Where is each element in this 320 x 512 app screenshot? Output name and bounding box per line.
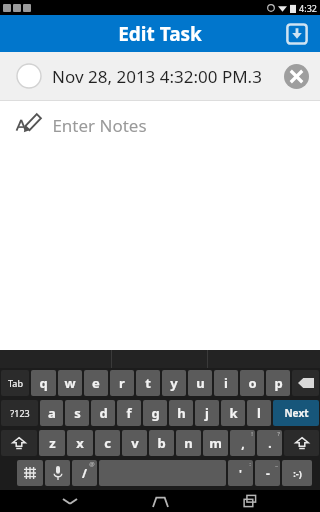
staticText: w — [64, 374, 76, 392]
button[interactable]: y — [162, 370, 186, 396]
staticText: b — [157, 434, 166, 452]
button[interactable]: g — [143, 400, 167, 426]
button[interactable]: : — [228, 460, 253, 486]
staticText: t — [145, 374, 151, 392]
staticText: 4:32 — [299, 2, 317, 14]
staticText: ?123 — [10, 407, 30, 419]
button[interactable]: Hide keyboard — [50, 490, 90, 512]
button[interactable]: _ — [255, 460, 280, 486]
button[interactable]: e — [84, 370, 108, 396]
button[interactable]: c — [95, 430, 120, 456]
staticText: c — [104, 434, 111, 452]
button[interactable]: f — [117, 400, 141, 426]
button[interactable]: Nov 28, 2013 4:32:00 PM.3 — [0, 52, 320, 100]
button[interactable]: ?123 — [1, 400, 38, 426]
button[interactable]: Tab — [1, 370, 29, 396]
staticText: k — [229, 404, 238, 422]
staticText: m — [209, 434, 222, 452]
staticText: - — [266, 465, 270, 481]
button[interactable]: o — [240, 370, 264, 396]
button[interactable] — [284, 430, 319, 456]
staticText: r — [119, 374, 125, 392]
button[interactable]: k — [221, 400, 245, 426]
button[interactable]: ? — [257, 430, 282, 456]
button[interactable]: Home — [140, 490, 180, 512]
button[interactable]: r — [110, 370, 134, 396]
staticText: v — [131, 434, 139, 452]
staticText: s — [74, 404, 81, 422]
staticText: Edit Task — [118, 21, 202, 47]
button[interactable]: ! — [230, 430, 255, 456]
staticText: z — [49, 434, 56, 452]
staticText: q — [39, 374, 48, 392]
staticText: n — [184, 434, 193, 452]
button[interactable]: x — [67, 430, 93, 456]
button[interactable]: :-) — [282, 460, 312, 486]
button[interactable]: z — [39, 430, 65, 456]
staticText: @ — [89, 460, 95, 468]
staticText: : — [249, 460, 251, 468]
staticText: p — [274, 374, 283, 392]
button[interactable]: w — [58, 370, 82, 396]
staticText: o — [248, 374, 257, 392]
button[interactable]: Next — [273, 400, 319, 426]
button[interactable]: v — [122, 430, 147, 456]
button[interactable] — [1, 430, 37, 456]
button[interactable] — [292, 370, 319, 396]
staticText: y — [170, 374, 178, 392]
button[interactable] — [17, 460, 43, 486]
button[interactable]: p — [266, 370, 290, 396]
staticText: e — [92, 374, 100, 392]
staticText: . — [268, 435, 272, 451]
button[interactable]: h — [169, 400, 193, 426]
button[interactable]: m — [203, 430, 228, 456]
staticText: g — [151, 404, 160, 422]
button[interactable]: t — [136, 370, 160, 396]
staticText: :-) — [293, 467, 302, 479]
staticText: , — [241, 435, 245, 451]
staticText: ' — [239, 466, 242, 481]
staticText: Tab — [8, 377, 23, 389]
button[interactable]: j — [195, 400, 219, 426]
button[interactable]: n — [176, 430, 201, 456]
button[interactable] — [45, 460, 70, 486]
button[interactable]: s — [65, 400, 89, 426]
button[interactable]: l — [247, 400, 271, 426]
button[interactable]: i — [214, 370, 238, 396]
button[interactable]: Recent apps — [230, 490, 270, 512]
staticText: Next — [284, 406, 309, 420]
staticText: _ — [275, 460, 278, 468]
button[interactable]: u — [188, 370, 212, 396]
button[interactable]: @ — [72, 460, 97, 486]
button[interactable]: a — [40, 400, 63, 426]
button[interactable]: Enter Notes — [0, 101, 320, 149]
button[interactable]: Clear date — [280, 60, 312, 92]
staticText: Nov 28, 2013 4:32:00 PM.3 — [52, 65, 262, 88]
staticText: d — [99, 404, 108, 422]
button[interactable]: q — [31, 370, 56, 396]
staticText: l — [257, 404, 261, 422]
staticText: ? — [277, 430, 280, 438]
staticText: f — [126, 404, 132, 422]
staticText: i — [224, 374, 228, 392]
staticText: x — [76, 434, 84, 452]
staticText: u — [196, 374, 205, 392]
button[interactable]: b — [149, 430, 174, 456]
staticText: / — [82, 465, 87, 481]
staticText: ! — [251, 430, 253, 438]
staticText: j — [205, 404, 209, 422]
staticText: a — [48, 404, 56, 422]
button[interactable]: Save — [280, 17, 314, 51]
staticText: Enter Notes — [52, 114, 147, 137]
button[interactable]: d — [91, 400, 115, 426]
staticText: h — [177, 404, 186, 422]
